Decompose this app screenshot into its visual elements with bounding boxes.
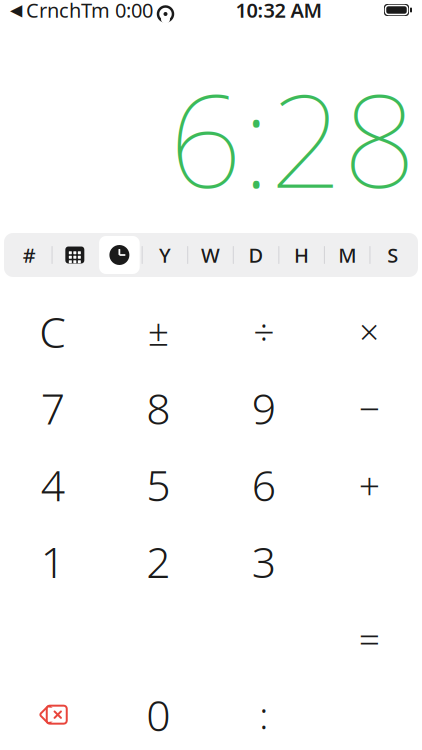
- staticText: 5: [146, 456, 170, 513]
- staticText: 10:32 AM: [235, 0, 322, 23]
- staticText: +: [359, 460, 380, 509]
- button[interactable]: :: [211, 676, 316, 750]
- staticText: #: [23, 242, 36, 268]
- staticText: ◀: [10, 1, 22, 19]
- button[interactable]: ×: [316, 293, 422, 370]
- staticText: S: [387, 242, 398, 268]
- button[interactable]: Time: [97, 235, 142, 275]
- staticText: ×: [359, 308, 379, 354]
- staticText: C: [39, 303, 66, 360]
- staticText: 9: [252, 380, 276, 436]
- button[interactable]: ±: [105, 293, 211, 370]
- staticText: 4: [41, 456, 65, 513]
- button[interactable]: 3: [211, 523, 316, 600]
- button[interactable]: S: [370, 235, 415, 275]
- button[interactable]: +: [316, 446, 422, 523]
- button[interactable]: D: [234, 235, 278, 275]
- button[interactable]: 7: [0, 370, 105, 446]
- staticText: 1: [41, 533, 65, 590]
- staticText: 8: [146, 380, 170, 436]
- staticText: 6: [252, 456, 276, 513]
- button[interactable]: Delete: [0, 676, 105, 750]
- button[interactable]: 0: [105, 676, 211, 750]
- staticText: Y: [159, 242, 171, 268]
- staticText: =: [359, 613, 380, 663]
- staticText: M: [338, 242, 356, 268]
- staticText: W: [201, 242, 220, 268]
- staticText: 7: [41, 380, 65, 436]
- button[interactable]: C: [0, 293, 105, 370]
- button[interactable]: ÷: [211, 293, 316, 370]
- button[interactable]: 6: [211, 446, 316, 523]
- button[interactable]: 9: [211, 370, 316, 446]
- staticText: −: [359, 383, 380, 433]
- button[interactable]: Calendar: [53, 235, 97, 275]
- button[interactable]: −: [316, 370, 422, 446]
- staticText: 2: [146, 533, 170, 590]
- button[interactable]: H: [279, 235, 324, 275]
- button[interactable]: 5: [105, 446, 211, 523]
- button[interactable]: Y: [143, 235, 187, 275]
- button[interactable]: 4: [0, 446, 105, 523]
- staticText: ÷: [253, 306, 274, 356]
- button[interactable]: =: [316, 600, 422, 676]
- button[interactable]: 1: [0, 523, 105, 600]
- staticText: H: [294, 242, 309, 268]
- button[interactable]: M: [325, 235, 369, 275]
- staticText: :: [259, 690, 268, 739]
- staticText: CrnchTm 0:00: [26, 0, 153, 23]
- staticText: 6:28: [169, 53, 416, 223]
- staticText: ±: [148, 306, 169, 356]
- button[interactable]: #: [7, 235, 52, 275]
- button[interactable]: 8: [105, 370, 211, 446]
- staticText: 3: [252, 533, 276, 590]
- staticText: D: [249, 242, 264, 268]
- button[interactable]: W: [188, 235, 233, 275]
- staticText: 0: [146, 686, 170, 743]
- button[interactable]: 2: [105, 523, 211, 600]
